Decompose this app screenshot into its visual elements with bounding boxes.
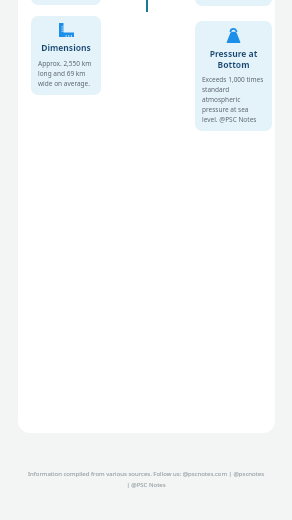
button[interactable] [195, 0, 272, 6]
staticText: Pressure at Bottom [202, 48, 265, 70]
staticText: Information compiled from various source… [26, 470, 266, 489]
staticText: Approx. 2,550 km long and 69 km wide on … [38, 59, 94, 88]
button[interactable]: Pressure [195, 21, 272, 131]
other: Pressure [226, 28, 241, 43]
staticText: Dimensions [38, 42, 94, 54]
other: Dimensions [59, 23, 74, 37]
button[interactable]: Dimensions [31, 16, 101, 95]
staticText: Exceeds 1,000 times standard atmospheric… [202, 75, 265, 124]
button[interactable] [31, 0, 101, 5]
